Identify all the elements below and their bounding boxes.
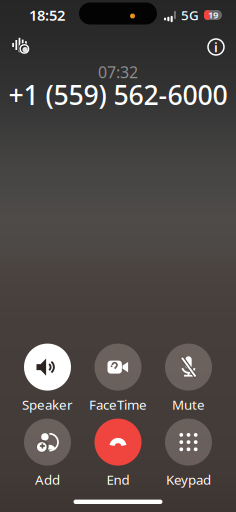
staticText: +1 (559) 562-6000 — [8, 77, 227, 112]
staticText: 18:52 — [29, 5, 65, 25]
staticText: Speaker — [22, 396, 73, 413]
button[interactable]: End — [83, 419, 153, 494]
staticText: 19 — [208, 9, 218, 21]
button[interactable]: Call Info — [202, 33, 230, 61]
button[interactable]: Add — [12, 419, 83, 494]
staticText: 07:32 — [98, 61, 138, 83]
staticText: 5G — [181, 6, 199, 24]
staticText: Mute — [172, 396, 205, 413]
staticText: End — [106, 471, 129, 488]
button[interactable]: Speaker — [12, 344, 83, 419]
staticText: i — [214, 38, 218, 56]
button[interactable]: Keypad — [153, 419, 224, 494]
button[interactable]: Mute — [153, 344, 224, 419]
staticText: Add — [35, 471, 60, 488]
staticText: FaceTime — [89, 396, 147, 413]
button[interactable]: Voice Isolation — [6, 31, 34, 59]
button[interactable]: FaceTime — [83, 344, 153, 419]
staticText: Keypad — [166, 471, 211, 488]
